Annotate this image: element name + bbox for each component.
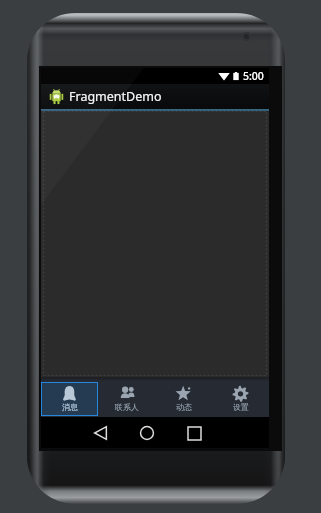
button[interactable]: 动态	[155, 382, 212, 416]
button[interactable]: Back	[85, 418, 115, 448]
button[interactable]: 设置	[212, 382, 269, 416]
staticText: 联系人	[115, 402, 139, 412]
staticText: 消息	[62, 402, 78, 412]
staticText: FragmentDemo	[69, 88, 162, 105]
button[interactable]: Recents	[179, 418, 209, 448]
staticText: 5:00	[243, 69, 264, 83]
button[interactable]: Home	[132, 418, 162, 448]
staticText: 动态	[176, 402, 192, 412]
button[interactable]: 联系人	[98, 382, 155, 416]
button[interactable]: 消息	[41, 382, 98, 416]
staticText: 设置	[233, 402, 249, 412]
